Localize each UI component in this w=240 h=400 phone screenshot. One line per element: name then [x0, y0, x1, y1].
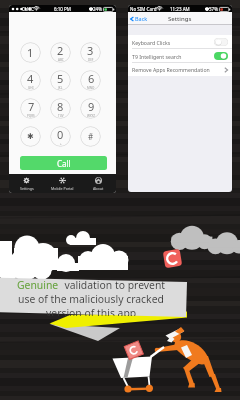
staticText: DEF — [88, 58, 94, 62]
staticText: + — [60, 142, 62, 146]
staticText: 3 — [87, 43, 94, 58]
staticText: ✱ — [27, 132, 34, 141]
button[interactable]: Back — [130, 15, 148, 22]
button[interactable]: Call — [20, 156, 107, 170]
staticText: 9 — [88, 99, 95, 114]
staticText: WXYZ — [87, 114, 95, 118]
button[interactable]: Switch on — [214, 52, 228, 60]
staticText: Back — [135, 15, 148, 22]
button[interactable]: # — [80, 126, 101, 147]
staticText: 2 — [57, 43, 64, 58]
staticText: 8 — [57, 99, 64, 114]
staticText: 24% — [93, 6, 102, 12]
button[interactable]: About — [80, 177, 116, 191]
staticText: Keyboard Clicks — [132, 39, 171, 46]
button[interactable]: 8 — [50, 98, 71, 119]
staticText: 1 — [27, 45, 34, 60]
staticText: No SIM Card — [130, 6, 157, 12]
button[interactable]: Cracked app icon — [162, 248, 183, 269]
button[interactable]: 5 — [50, 70, 71, 91]
staticText: use of the maliciously cracked — [18, 292, 164, 306]
staticText: validation to prevent — [59, 278, 166, 292]
button[interactable]: 7 — [20, 98, 41, 119]
staticText: About — [93, 186, 104, 191]
button[interactable]: Settings — [9, 177, 44, 191]
staticText: 11:23 AM — [170, 6, 190, 12]
button[interactable]: 6 — [80, 70, 101, 91]
button[interactable]: ✱ — [20, 126, 41, 147]
staticText: Remove Apps Recommendation — [132, 66, 210, 73]
staticText: TUV — [58, 114, 64, 118]
staticText: 7 — [28, 99, 35, 114]
button[interactable]: T9 Intelligent search — [128, 49, 232, 63]
staticText: 0 — [57, 127, 64, 142]
staticText: ABC — [58, 58, 64, 62]
staticText: CUCC — [22, 6, 34, 12]
staticText: 57% — [209, 6, 218, 12]
staticText: MNO — [87, 86, 95, 90]
staticText: version of this app — [46, 306, 137, 316]
button[interactable]: 4 — [20, 70, 41, 91]
staticText: 4 — [27, 71, 34, 86]
button[interactable]: Remove Apps Recommendation — [128, 63, 232, 76]
button[interactable]: 1 — [20, 42, 41, 63]
button[interactable]: 0 — [50, 126, 71, 147]
staticText: Settings — [20, 186, 34, 191]
button[interactable]: Mobile Portal — [44, 177, 80, 191]
staticText: Genuine — [17, 278, 59, 292]
staticText: 6:10 PM — [54, 6, 71, 12]
staticText: 6 — [88, 71, 95, 86]
staticText: T9 Intelligent search — [132, 53, 182, 60]
button[interactable]: 9 — [80, 98, 101, 119]
staticText: Call — [57, 158, 71, 169]
staticText: Settings — [168, 15, 192, 23]
button[interactable]: Switch off — [214, 38, 228, 46]
staticText: # — [88, 131, 94, 142]
button[interactable]: 3 — [80, 42, 101, 63]
staticText: JKL — [58, 86, 63, 90]
button[interactable]: Keyboard Clicks — [128, 35, 232, 49]
staticText: Mobile Portal — [51, 186, 74, 191]
staticText: GHI — [28, 86, 34, 90]
staticText: PQRS — [27, 114, 35, 118]
staticText: 5 — [57, 71, 64, 86]
button[interactable]: 2 — [50, 42, 71, 63]
